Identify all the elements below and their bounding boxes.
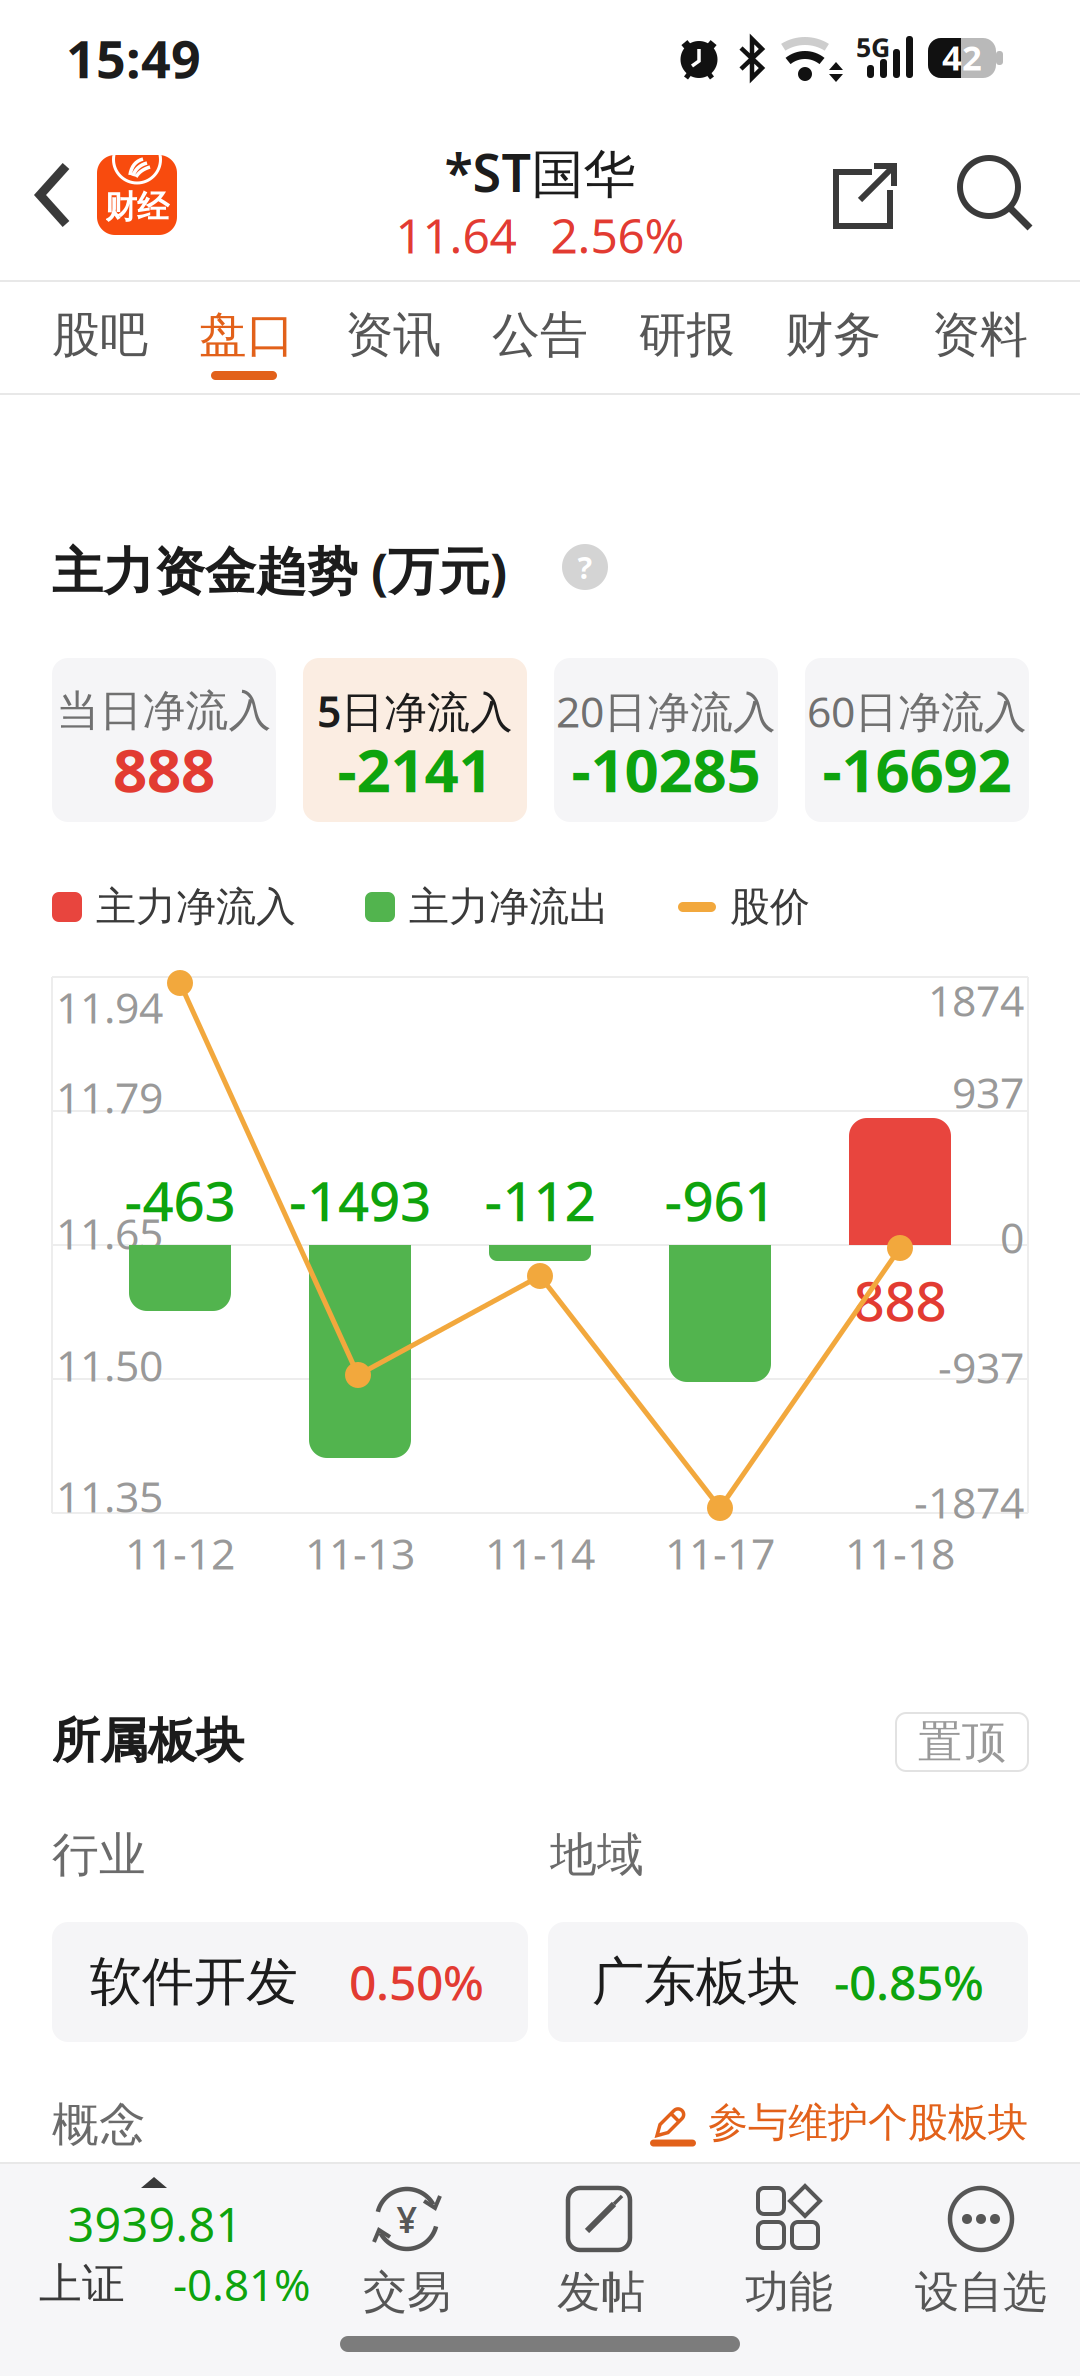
staticText: -2141: [337, 729, 492, 809]
staticText: 11-14: [485, 1525, 595, 1581]
staticText: 资料: [932, 305, 1028, 364]
button[interactable]: 盘口: [199, 305, 295, 364]
button[interactable]: 功能: [689, 2176, 889, 2326]
staticText: 3939.81: [67, 2193, 242, 2255]
staticText: 20日净流入: [556, 683, 776, 739]
staticText: 研报: [639, 305, 735, 364]
button[interactable]: 财经: [97, 155, 177, 235]
staticText: -0.81%: [173, 2255, 311, 2313]
button[interactable]: Share: [828, 162, 898, 232]
staticText: 交易: [363, 2265, 451, 2319]
button[interactable]: 5日净流入: [303, 658, 527, 822]
staticText: 11.35: [56, 1468, 163, 1524]
staticText: 11.50: [56, 1337, 163, 1393]
staticText: 主力净流入: [96, 882, 296, 931]
button[interactable]: 研报: [639, 305, 735, 364]
button[interactable]: 发帖: [501, 2176, 701, 2326]
staticText: ?: [577, 547, 592, 587]
button[interactable]: 交易: [307, 2176, 507, 2326]
staticText: 概念: [52, 2096, 146, 2154]
button[interactable]: 置顶: [896, 1713, 1028, 1771]
staticText: 1874: [928, 972, 1024, 1028]
staticText: 主力资金趋势 (万元): [52, 536, 507, 604]
button[interactable]: 资料: [932, 305, 1028, 364]
staticText: 股价: [730, 882, 810, 931]
button[interactable]: 股吧: [52, 305, 148, 364]
staticText: -10285: [571, 729, 760, 809]
staticText: 11.94: [56, 979, 163, 1035]
staticText: -937: [938, 1339, 1024, 1395]
staticText: 地域: [550, 1826, 644, 1884]
staticText: 11-12: [125, 1525, 235, 1581]
staticText: 行业: [52, 1826, 146, 1884]
staticText: 发帖: [557, 2265, 645, 2319]
staticText: -463: [124, 1164, 235, 1236]
staticText: 60日净流入: [807, 683, 1027, 739]
staticText: 888: [113, 729, 215, 809]
button[interactable]: 设自选: [881, 2176, 1080, 2326]
button[interactable]: 公告: [492, 305, 588, 364]
button[interactable]: 软件开发: [52, 1922, 528, 2042]
staticText: 11.65: [56, 1205, 163, 1261]
staticText: ¥: [396, 2195, 417, 2243]
staticText: 5G: [856, 29, 890, 65]
staticText: 937: [952, 1064, 1024, 1120]
staticText: 11-13: [305, 1525, 415, 1581]
staticText: 15:49: [66, 23, 201, 93]
staticText: 公告: [492, 305, 588, 364]
staticText: 11-18: [845, 1525, 955, 1581]
button[interactable]: 财务: [785, 305, 881, 364]
button[interactable]: 当日净流入: [52, 658, 276, 822]
staticText: 42: [942, 34, 982, 80]
staticText: 所属板块: [52, 1711, 244, 1770]
staticText: 置顶: [918, 1715, 1006, 1769]
staticText: -16692: [822, 729, 1011, 809]
staticText: 当日净流入: [56, 685, 271, 737]
staticText: 财经: [105, 187, 169, 227]
staticText: 11.79: [56, 1069, 163, 1125]
button[interactable]: 3939.81: [0, 2162, 330, 2330]
staticText: -112: [484, 1164, 595, 1236]
staticText: 股吧: [52, 305, 148, 364]
staticText: 0.50%: [349, 1950, 484, 2014]
staticText: -1493: [289, 1164, 431, 1236]
staticText: 888: [853, 1264, 946, 1336]
staticText: 设自选: [915, 2265, 1047, 2319]
staticText: 主力净流出: [409, 882, 609, 931]
staticText: 参与维护个股板块: [708, 2098, 1028, 2147]
staticText: 0: [1000, 1209, 1024, 1265]
staticText: 11-17: [665, 1525, 775, 1581]
staticText: -961: [664, 1164, 775, 1236]
staticText: 2.56%: [550, 203, 684, 267]
staticText: -0.85%: [834, 1950, 984, 2014]
button[interactable]: 60日净流入: [805, 658, 1029, 822]
button[interactable]: Help: [562, 544, 608, 590]
button[interactable]: Search: [960, 158, 1034, 232]
staticText: 功能: [745, 2265, 833, 2319]
staticText: -1874: [914, 1474, 1024, 1530]
staticText: 盘口: [199, 305, 295, 364]
staticText: 广东板块: [592, 1950, 800, 2014]
button[interactable]: 广东板块: [548, 1922, 1028, 2042]
staticText: 软件开发: [90, 1950, 298, 2014]
button[interactable]: 20日净流入: [554, 658, 778, 822]
staticText: *ST国华: [444, 137, 635, 207]
staticText: 财务: [785, 305, 881, 364]
staticText: 5日净流入: [317, 683, 513, 739]
button[interactable]: 资讯: [345, 305, 441, 364]
staticText: 上证: [39, 2258, 125, 2310]
button[interactable]: Back: [36, 160, 72, 230]
staticText: 11.64: [395, 203, 516, 267]
button[interactable]: 参与维护个股板块: [650, 2098, 1028, 2147]
staticText: 资讯: [345, 305, 441, 364]
